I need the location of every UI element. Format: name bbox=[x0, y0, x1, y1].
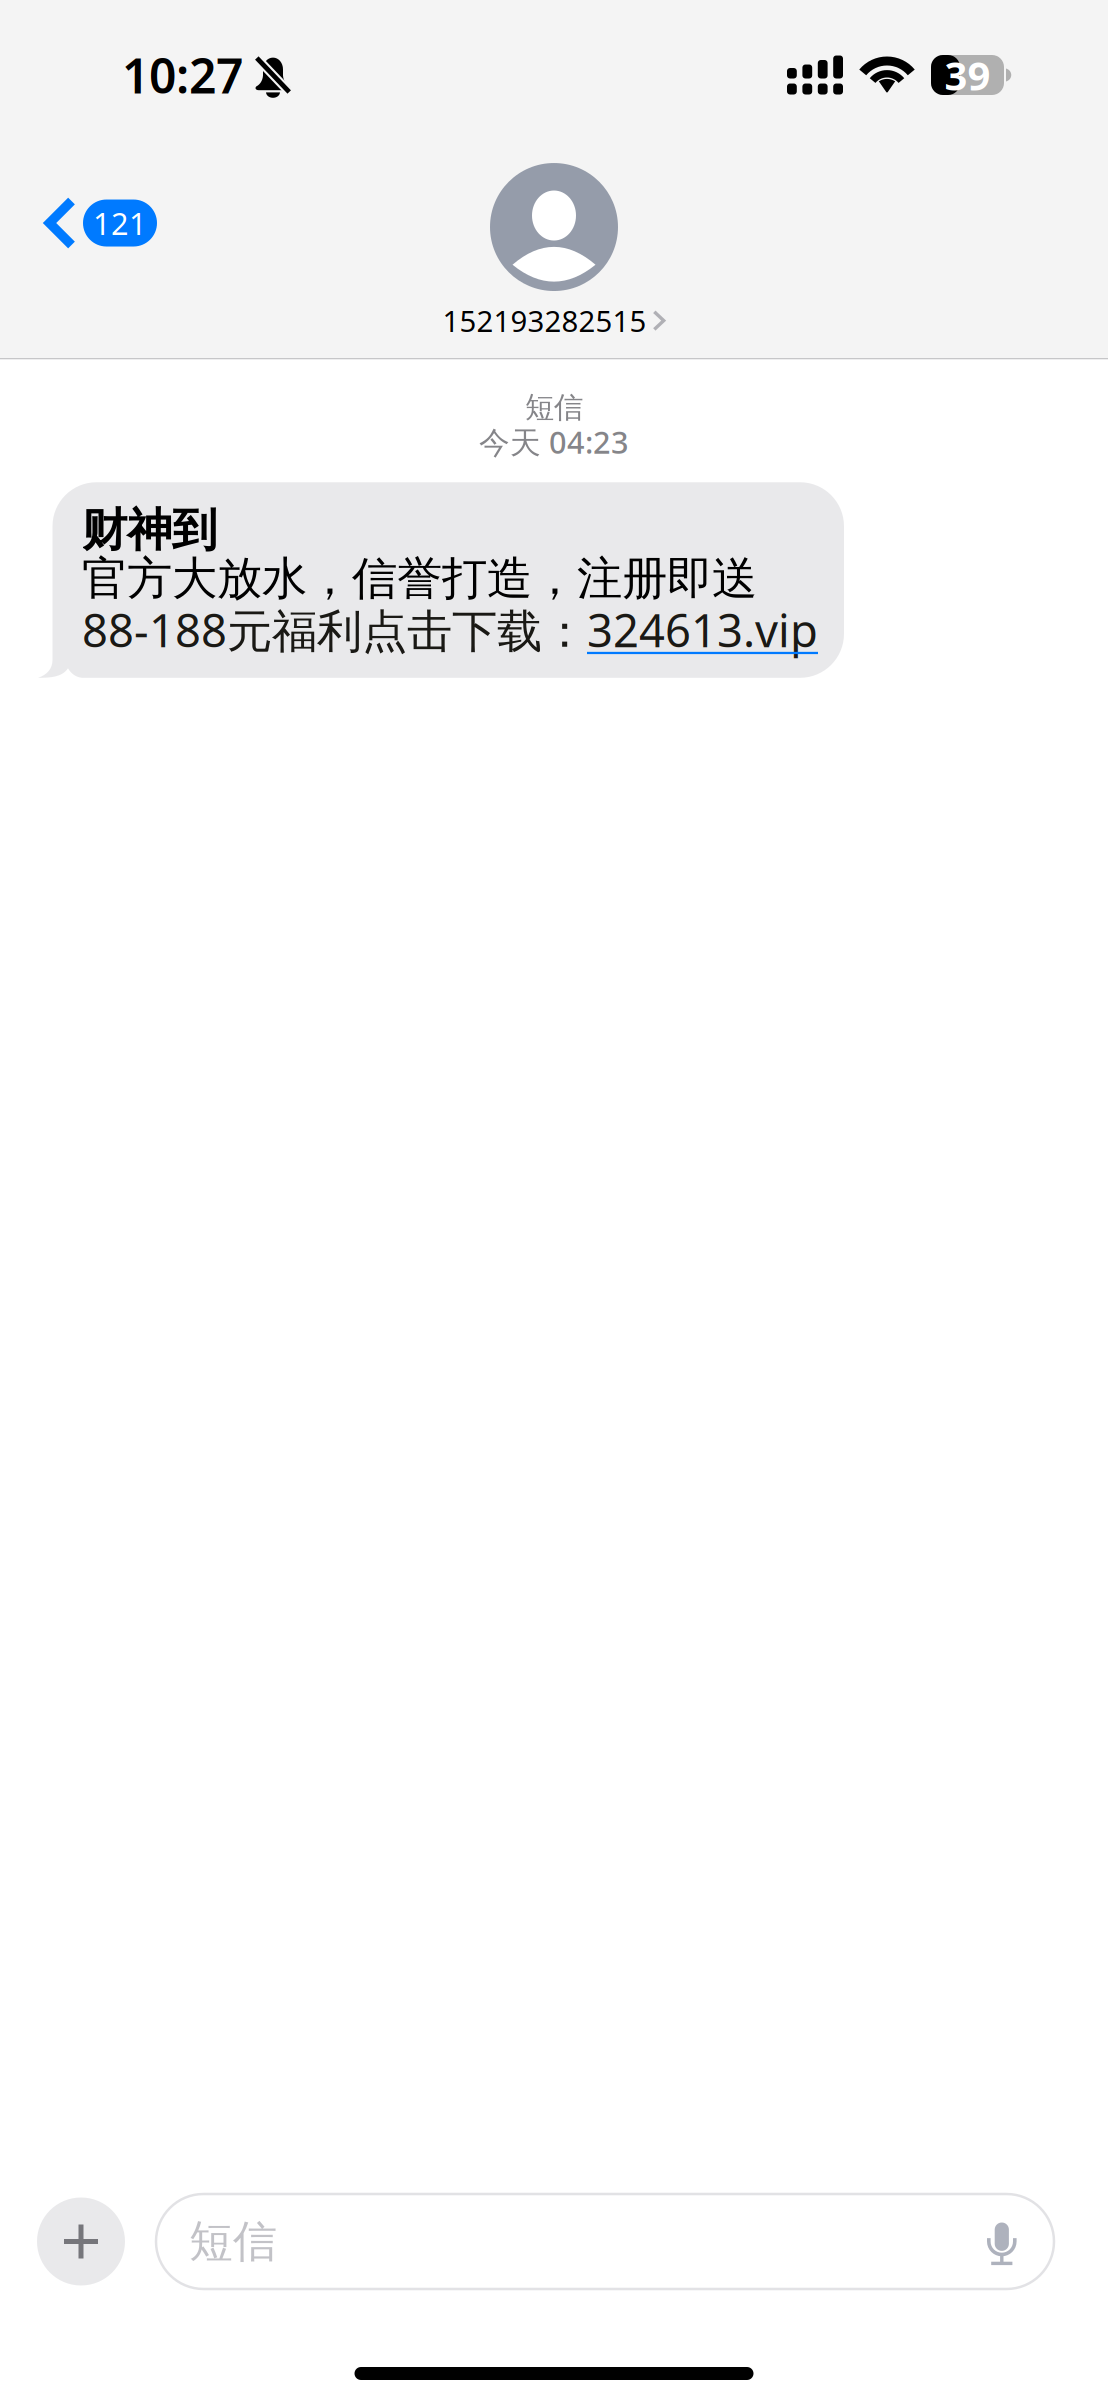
staticText: 短信 bbox=[189, 2214, 277, 2268]
staticText: 今天 04:23 bbox=[479, 421, 629, 462]
button[interactable]: Back bbox=[44, 186, 157, 260]
staticText: 官方大放水，信誉打造，注册即送 bbox=[82, 551, 757, 607]
staticText: 121 bbox=[93, 203, 147, 243]
staticText: 短信 bbox=[525, 389, 583, 425]
staticText: 39 bbox=[944, 48, 990, 101]
staticText: 10:27 bbox=[122, 43, 243, 107]
staticText: 财神到 bbox=[82, 502, 217, 558]
staticText: 152193282515 bbox=[442, 301, 646, 340]
staticText: 88-188元福利点击下载：324613.vip bbox=[82, 600, 818, 660]
button[interactable]: More options bbox=[37, 2197, 125, 2285]
button[interactable]: Dictate bbox=[986, 2219, 1016, 2263]
